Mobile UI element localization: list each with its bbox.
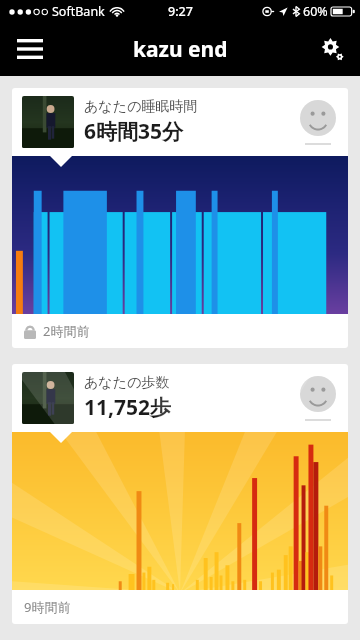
staticText: 60% (303, 3, 328, 20)
staticText: 11,752歩 (84, 393, 172, 422)
button[interactable]: あなたの歩数 (12, 364, 348, 624)
button[interactable]: Menu (8, 27, 52, 71)
staticText: 9時間前 (24, 598, 71, 616)
button[interactable]: Settings (310, 27, 354, 71)
staticText: 9:27 (168, 3, 193, 20)
staticText: SoftBank (52, 3, 105, 20)
staticText: kazu end (133, 35, 228, 64)
staticText: 6時間35分 (84, 117, 184, 146)
staticText: あなたの歩数 (84, 374, 170, 392)
button[interactable]: あなたの睡眠時間 (12, 88, 348, 348)
staticText: 2時間前 (43, 322, 90, 340)
staticText: あなたの睡眠時間 (84, 98, 198, 116)
